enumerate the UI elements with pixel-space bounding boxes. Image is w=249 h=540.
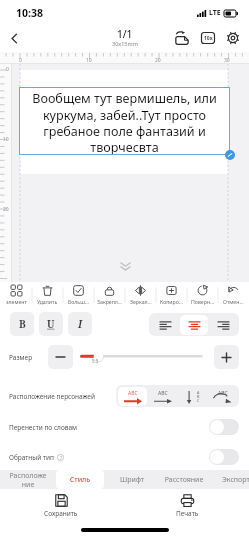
staticText: Расположение персонажей: [9, 392, 95, 401]
button[interactable]: Collapse: [114, 255, 136, 277]
button[interactable]: Settings: [220, 24, 246, 52]
button[interactable]: Поверн...: [187, 282, 218, 308]
button[interactable]: Text direction 4: [208, 387, 237, 406]
staticText: Закрепл...: [97, 298, 123, 305]
button[interactable]: Вообщем тут вермишель, или куркума, забе…: [19, 87, 230, 155]
button[interactable]: Back: [3, 27, 25, 49]
button[interactable]: Расстояние: [160, 470, 208, 489]
staticText: Расстояние: [164, 475, 204, 485]
button[interactable]: Decrease size: [48, 345, 73, 369]
button[interactable]: Align center: [180, 315, 208, 335]
button[interactable]: Сохранить: [26, 494, 96, 522]
button[interactable]: Resize: [225, 150, 235, 160]
staticText: Вообщем тут вермишель, или куркума, забе…: [21, 90, 228, 155]
button[interactable]: Increase size: [214, 345, 239, 369]
button[interactable]: элемент: [0, 282, 32, 308]
button[interactable]: Align left: [151, 315, 179, 335]
staticText: Стиль: [60, 475, 100, 485]
staticText: Отмен...: [223, 298, 244, 305]
button[interactable]: I: [68, 312, 92, 336]
staticText: Расположение: [8, 471, 48, 489]
staticText: 1/1: [117, 27, 133, 41]
staticText: ?: [60, 455, 62, 461]
staticText: LTE: [209, 8, 221, 18]
staticText: Шрифт: [112, 475, 152, 485]
button[interactable]: B: [10, 312, 34, 336]
staticText: 10x: [204, 35, 213, 42]
staticText: 30: [224, 57, 230, 64]
staticText: 30x15mm: [112, 40, 138, 47]
staticText: Сохранить: [44, 509, 78, 518]
button[interactable]: U: [39, 312, 63, 336]
staticText: 20: [3, 206, 9, 213]
staticText: Размер: [9, 353, 33, 362]
button[interactable]: Удалить: [32, 282, 63, 308]
staticText: Печать: [176, 509, 199, 518]
staticText: Перенести по словам: [9, 423, 78, 432]
staticText: 10: [86, 57, 92, 64]
staticText: 0: [6, 66, 9, 73]
button[interactable]: Align right: [209, 315, 237, 335]
staticText: ABC: [158, 390, 168, 397]
button[interactable]: Export: [169, 24, 195, 52]
staticText: 10: [3, 136, 9, 143]
staticText: 5.5: [92, 358, 99, 364]
button[interactable]: Печать: [152, 494, 222, 522]
button[interactable]: Text direction 1: [118, 387, 147, 406]
staticText: Обратный тип: [9, 453, 54, 462]
button[interactable]: Copies: [195, 24, 221, 52]
button[interactable]: Text direction 3: [178, 387, 207, 406]
staticText: ABC: [218, 390, 228, 397]
button[interactable]: Text direction 2: [148, 387, 177, 406]
staticText: Удалить: [37, 298, 58, 305]
staticText: Поверн...: [191, 298, 215, 305]
staticText: Больш...: [68, 298, 89, 305]
staticText: элемент: [6, 298, 27, 305]
button[interactable]: Шрифт: [108, 470, 156, 489]
button[interactable]: Копиро...: [156, 282, 187, 308]
button[interactable]: Перенести по словам: [9, 415, 239, 439]
button[interactable]: Обратный тип: [9, 445, 239, 469]
button[interactable]: Отмен...: [218, 282, 249, 308]
button[interactable]: Больш...: [63, 282, 94, 308]
staticText: Копиро...: [160, 298, 183, 305]
button[interactable]: Расположение: [4, 470, 52, 489]
button[interactable]: Экспорт: [212, 470, 249, 489]
staticText: Зеркал...: [130, 298, 152, 305]
staticText: A B C: [197, 390, 200, 404]
staticText: 0: [19, 57, 22, 64]
staticText: 20: [155, 57, 161, 64]
staticText: U: [47, 317, 55, 331]
staticText: I: [78, 317, 83, 331]
button[interactable]: Закрепл...: [94, 282, 125, 308]
staticText: ABC: [128, 390, 138, 397]
button[interactable]: Зеркал...: [125, 282, 156, 308]
staticText: B: [19, 317, 26, 331]
staticText: 10:38: [16, 6, 43, 20]
button[interactable]: Стиль: [56, 470, 104, 489]
staticText: Экспорт: [216, 475, 249, 485]
